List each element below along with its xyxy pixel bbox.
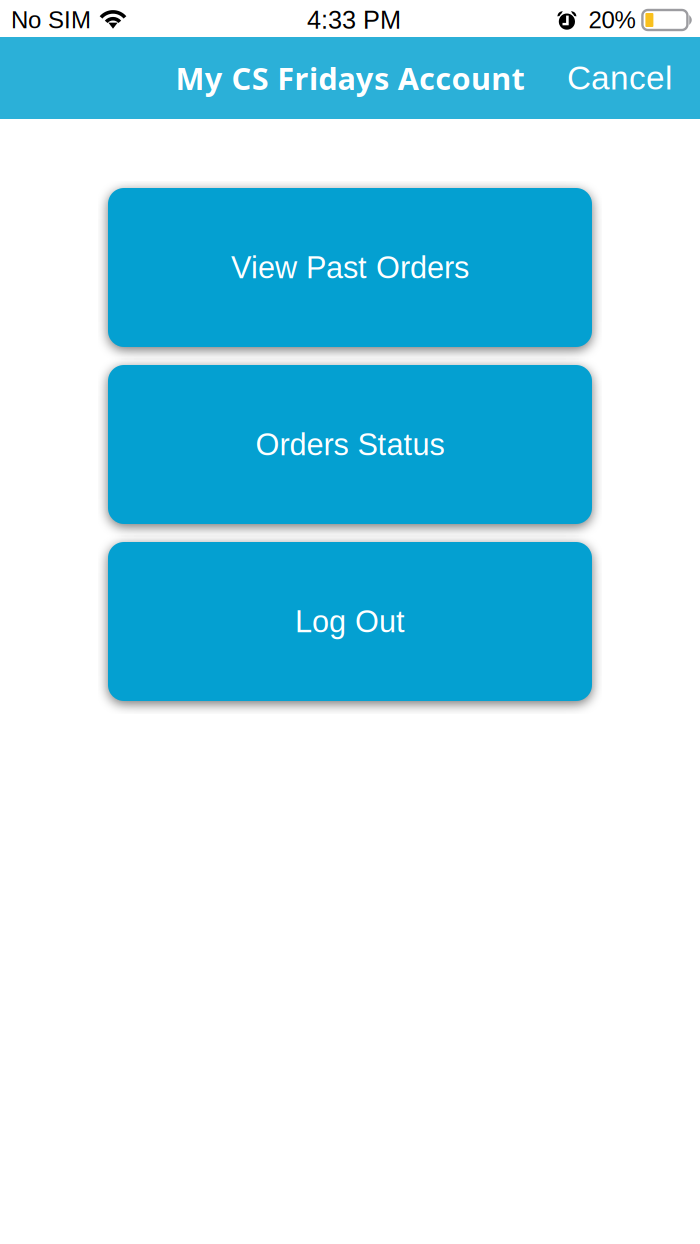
staticText: 20% [588,7,635,33]
staticText: 4:33 PM [307,6,401,34]
button[interactable]: Cancel [551,47,688,109]
staticText: Log Out [295,604,405,639]
staticText: Cancel [567,59,672,97]
staticText: No SIM [11,7,91,33]
button[interactable]: View Past Orders [108,188,592,347]
staticText: My CS Fridays Account [175,57,524,99]
staticText: View Past Orders [231,250,469,285]
button[interactable]: Log Out [108,542,592,701]
staticText: Orders Status [255,427,444,462]
button[interactable]: Orders Status [108,365,592,524]
